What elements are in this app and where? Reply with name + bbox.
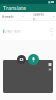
staticText: french [2,14,13,19]
button[interactable]: Gallery [48,63,51,66]
staticText: Translate [3,4,26,12]
button[interactable]: Clear text [50,34,53,37]
staticText: spanish [33,11,45,22]
staticText: ▾ [53,15,54,18]
button[interactable]: Voice input [28,54,39,65]
staticText: ▾ [22,15,23,18]
staticText: ✕ [50,34,52,37]
staticText: ▮▮ [48,0,50,3]
button[interactable]: Camera [17,55,26,64]
staticText: Enter text [4,28,20,34]
button[interactable]: Flash [48,68,51,71]
button[interactable]: Copy [50,28,53,31]
button[interactable]: french [0,12,25,20]
button[interactable]: spanish [31,12,56,20]
